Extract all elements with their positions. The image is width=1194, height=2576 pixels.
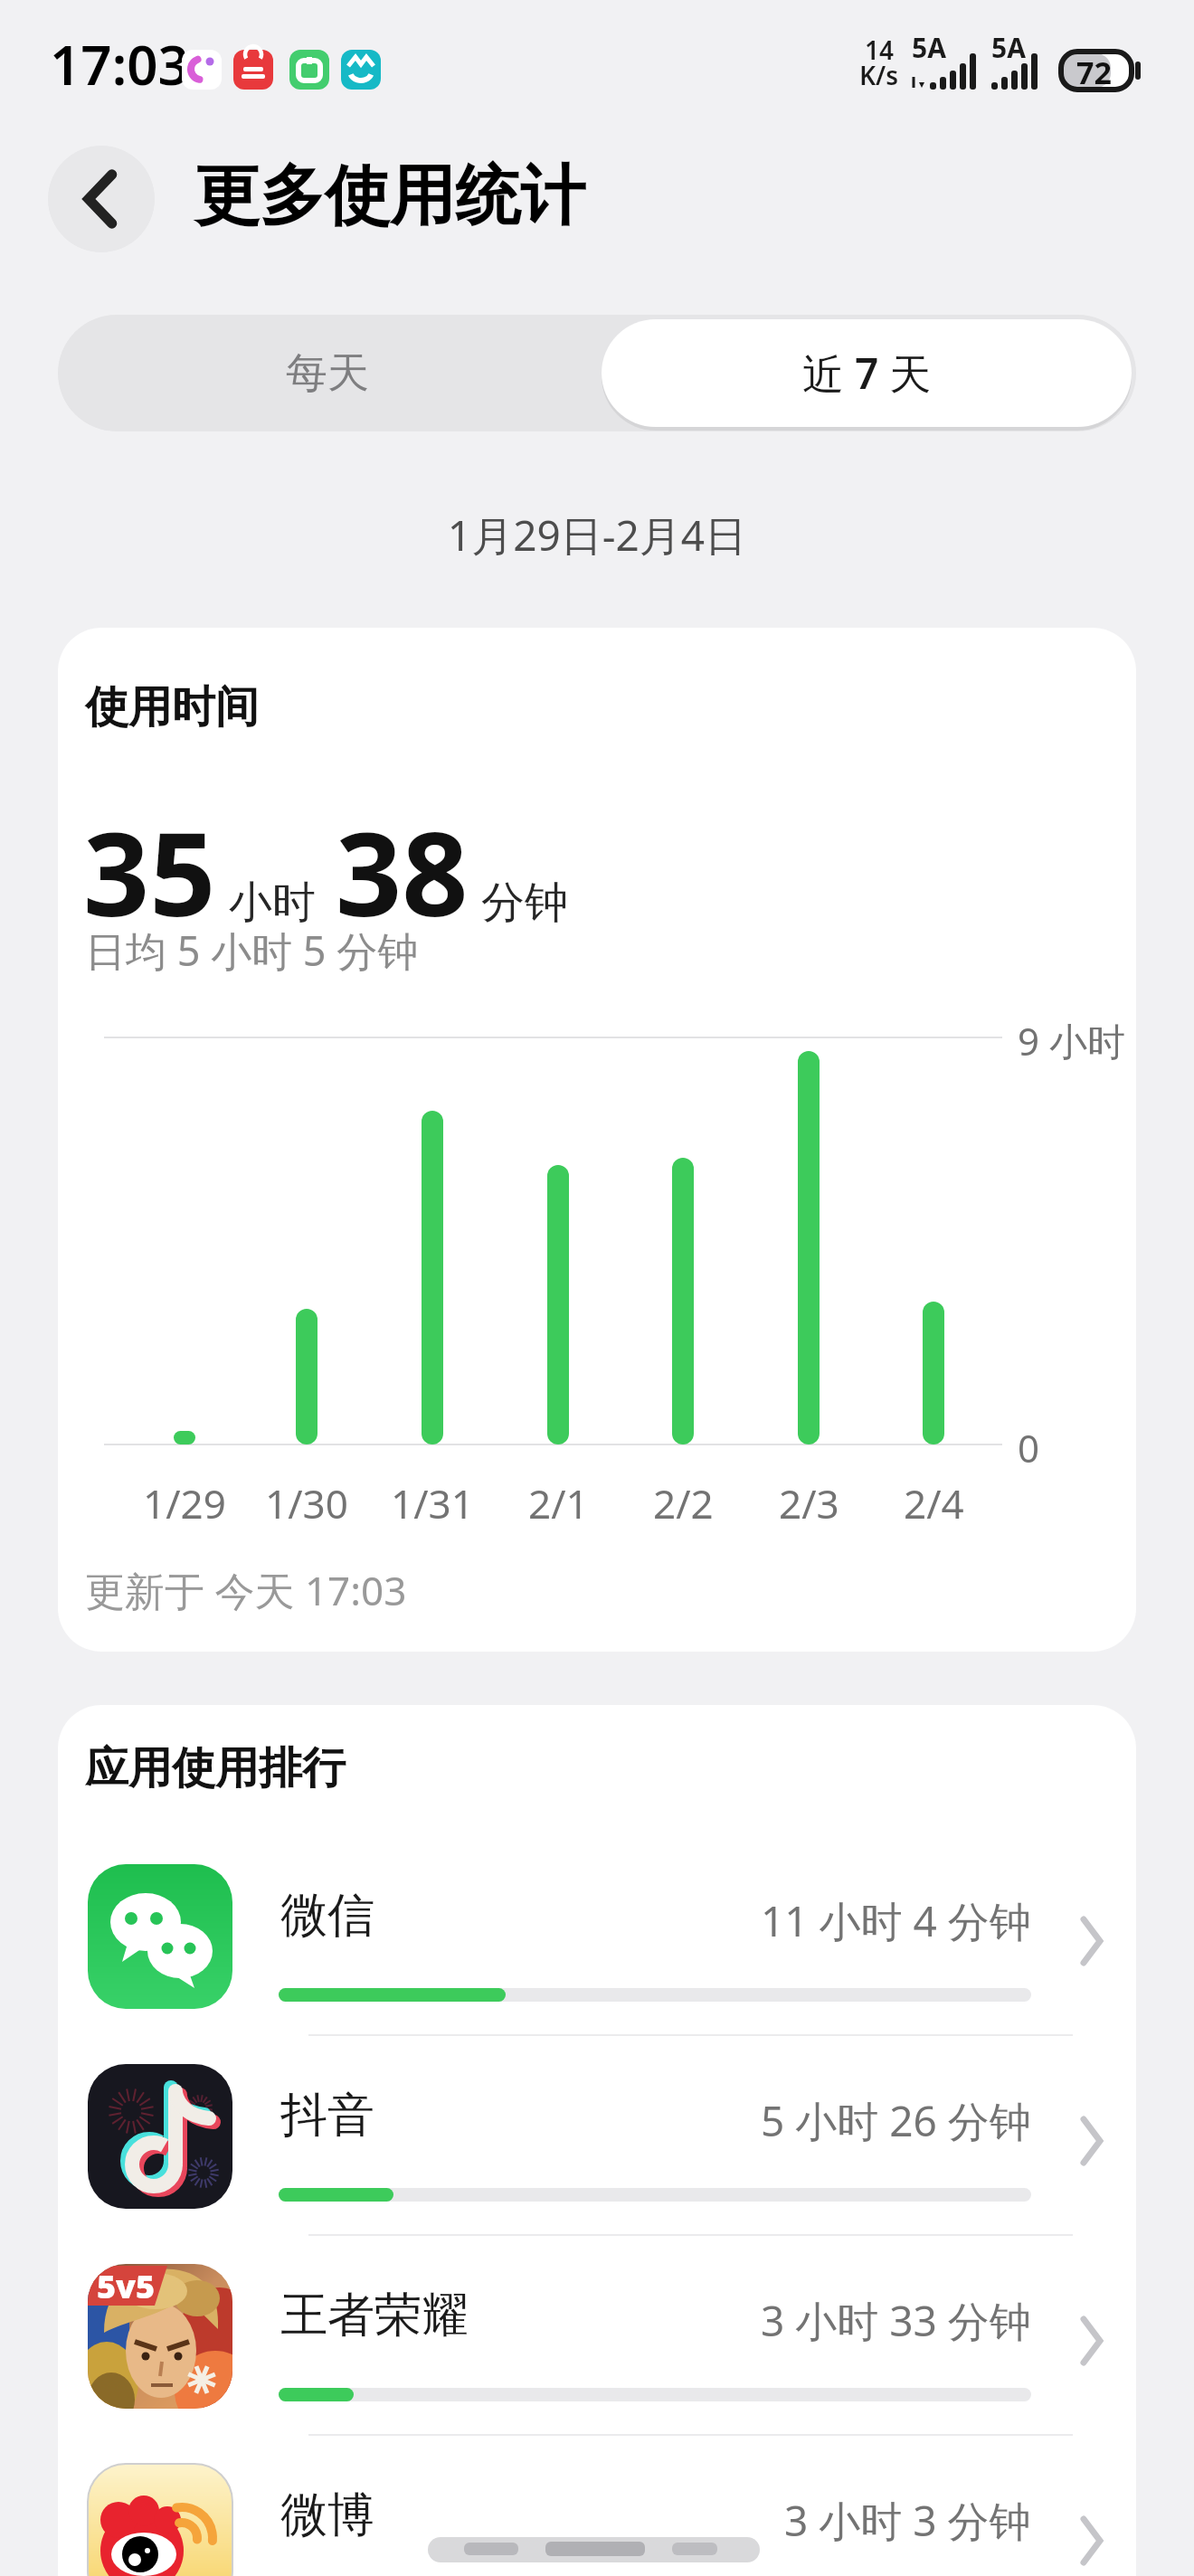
staticText: 5 小时 26 分钟 xyxy=(761,2092,1031,2149)
button[interactable]: 微信 xyxy=(58,1836,1136,2036)
staticText: 抖音 xyxy=(280,2086,374,2145)
staticText: 35 xyxy=(83,792,216,950)
staticText: 更多使用统计 xyxy=(194,156,585,238)
staticText: 使用时间 xyxy=(85,680,259,734)
staticText: 5v5 xyxy=(97,2264,156,2308)
staticText: 0 xyxy=(1018,1422,1040,1473)
staticText: 1/29 xyxy=(143,1476,226,1530)
staticText: 17:03 xyxy=(50,27,189,101)
staticText: 38 xyxy=(336,792,469,950)
staticText: 微博 xyxy=(280,2486,374,2545)
staticText: 1/31 xyxy=(391,1476,474,1530)
staticText: 2/2 xyxy=(653,1476,714,1530)
button[interactable]: 抖音 xyxy=(58,2036,1136,2236)
button[interactable]: 每天 xyxy=(58,315,597,431)
staticText: 分钟 xyxy=(481,876,568,930)
staticText: 14 xyxy=(865,33,895,67)
staticText: 3 小时 33 分钟 xyxy=(761,2292,1031,2349)
staticText: 每天 xyxy=(286,347,369,400)
button[interactable] xyxy=(48,146,155,252)
staticText: 1/30 xyxy=(265,1476,348,1530)
button[interactable]: 微博 xyxy=(58,2436,1136,2576)
staticText: 2/1 xyxy=(528,1476,589,1530)
staticText: 11 小时 4 分钟 xyxy=(761,1892,1031,1949)
staticText: 3 小时 3 分钟 xyxy=(784,2492,1031,2549)
staticText: 近 7 天 xyxy=(802,345,932,402)
staticText: 9 小时 xyxy=(1018,1015,1125,1066)
staticText: 微信 xyxy=(280,1886,374,1946)
staticText: 王者荣耀 xyxy=(280,2286,469,2345)
staticText: 2/3 xyxy=(779,1476,839,1530)
staticText: 应用使用排行 xyxy=(85,1741,346,1795)
staticText: 更新于 今天 17:03 xyxy=(85,1563,407,1617)
staticText: K/s xyxy=(859,58,899,92)
staticText: 小时 xyxy=(229,876,316,930)
staticText: 5A xyxy=(991,29,1026,66)
staticText: 1月29日-2月4日 xyxy=(0,507,1194,563)
staticText: 5A xyxy=(912,29,946,66)
button[interactable]: 近 7 天 xyxy=(602,319,1132,427)
staticText: 日均 5 小时 5 分钟 xyxy=(85,923,419,978)
staticText: 2/4 xyxy=(904,1476,964,1530)
button[interactable]: 5v5 xyxy=(58,2236,1136,2436)
staticText: 72 xyxy=(1076,52,1112,93)
